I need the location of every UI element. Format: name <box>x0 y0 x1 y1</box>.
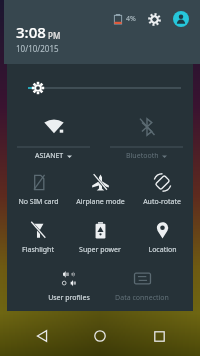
button[interactable]: Flashlight <box>7 216 69 264</box>
button[interactable]: Brightness <box>7 78 193 98</box>
staticText: 4% <box>126 14 136 24</box>
button[interactable]: Data connection <box>111 264 173 311</box>
staticText: Auto-rotate <box>143 197 181 207</box>
staticText: ASIANET <box>35 151 64 161</box>
button[interactable]: User <box>171 9 191 29</box>
staticText: Bluetooth <box>126 151 159 161</box>
button[interactable]: Settings <box>145 10 163 28</box>
button[interactable]: Location <box>131 216 193 264</box>
button[interactable]: Home <box>83 319 117 353</box>
button[interactable]: Back <box>25 319 59 353</box>
button[interactable]: User profiles <box>38 264 100 311</box>
button[interactable]: Super power <box>69 216 131 264</box>
button[interactable]: Airplane mode <box>69 168 131 216</box>
staticText: Location <box>148 245 177 255</box>
staticText: 10/10/2015 <box>16 43 59 54</box>
button[interactable]: Recents <box>142 319 176 353</box>
button[interactable]: Auto-rotate <box>131 168 193 216</box>
staticText: Data connection <box>115 293 169 303</box>
staticText: 3:08 <box>16 22 46 42</box>
staticText: Airplane mode <box>76 197 125 207</box>
button[interactable]: Wi-Fi <box>17 106 90 164</box>
button[interactable]: Bluetooth <box>110 106 183 164</box>
staticText: PM <box>48 30 61 41</box>
staticText: Flashlight <box>22 245 54 255</box>
staticText: Super power <box>79 245 121 255</box>
button[interactable]: No SIM card <box>7 168 69 216</box>
staticText: No SIM card <box>18 197 59 207</box>
staticText: User profiles <box>48 293 90 303</box>
